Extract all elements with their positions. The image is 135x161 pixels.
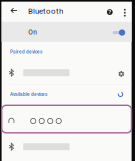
- button[interactable]: [2, 105, 132, 133]
- button[interactable]: Bluetooth: [28, 5, 64, 17]
- button[interactable]: Back: [7, 3, 21, 17]
- button[interactable]: Paired devices: [10, 46, 58, 58]
- button[interactable]: [2, 60, 132, 84]
- button[interactable]: On: [2, 22, 132, 42]
- button[interactable]: Available devices: [10, 88, 64, 100]
- button[interactable]: Scan for devices: [114, 88, 126, 100]
- staticText: Paired devices: [10, 49, 42, 54]
- button[interactable]: Help: [104, 6, 116, 18]
- button[interactable]: More options: [120, 7, 130, 19]
- button[interactable]: Device settings: [116, 68, 127, 79]
- staticText: On: [28, 28, 37, 36]
- staticText: ?: [108, 9, 111, 15]
- staticText: Available devices: [10, 91, 47, 97]
- button[interactable]: [2, 134, 132, 158]
- staticText: Bluetooth: [28, 6, 63, 16]
